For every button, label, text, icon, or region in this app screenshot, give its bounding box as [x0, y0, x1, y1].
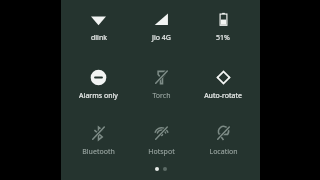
button[interactable]: Page 1: [155, 167, 159, 171]
button[interactable]: 51%: [192, 8, 254, 46]
staticText: Jio 4G: [152, 33, 171, 43]
staticText: 51%: [216, 33, 230, 43]
staticText: Location: [209, 147, 238, 157]
button[interactable]: Location: [192, 122, 254, 160]
button[interactable]: Page 2: [163, 167, 167, 171]
staticText: Bluetooth: [82, 147, 115, 157]
button[interactable]: Jio 4G: [130, 8, 192, 46]
button[interactable]: Auto-rotate: [192, 66, 254, 104]
staticText: dlink: [91, 33, 107, 43]
button[interactable]: Alarms only: [67, 66, 130, 104]
button[interactable]: Hotspot: [130, 122, 192, 160]
button[interactable]: dlink: [67, 8, 130, 46]
button[interactable]: Bluetooth: [67, 122, 130, 160]
staticText: Alarms only: [79, 91, 118, 101]
button[interactable]: Torch: [130, 66, 192, 104]
staticText: Hotspot: [148, 147, 175, 157]
staticText: Auto-rotate: [204, 91, 242, 101]
staticText: Torch: [152, 91, 171, 101]
